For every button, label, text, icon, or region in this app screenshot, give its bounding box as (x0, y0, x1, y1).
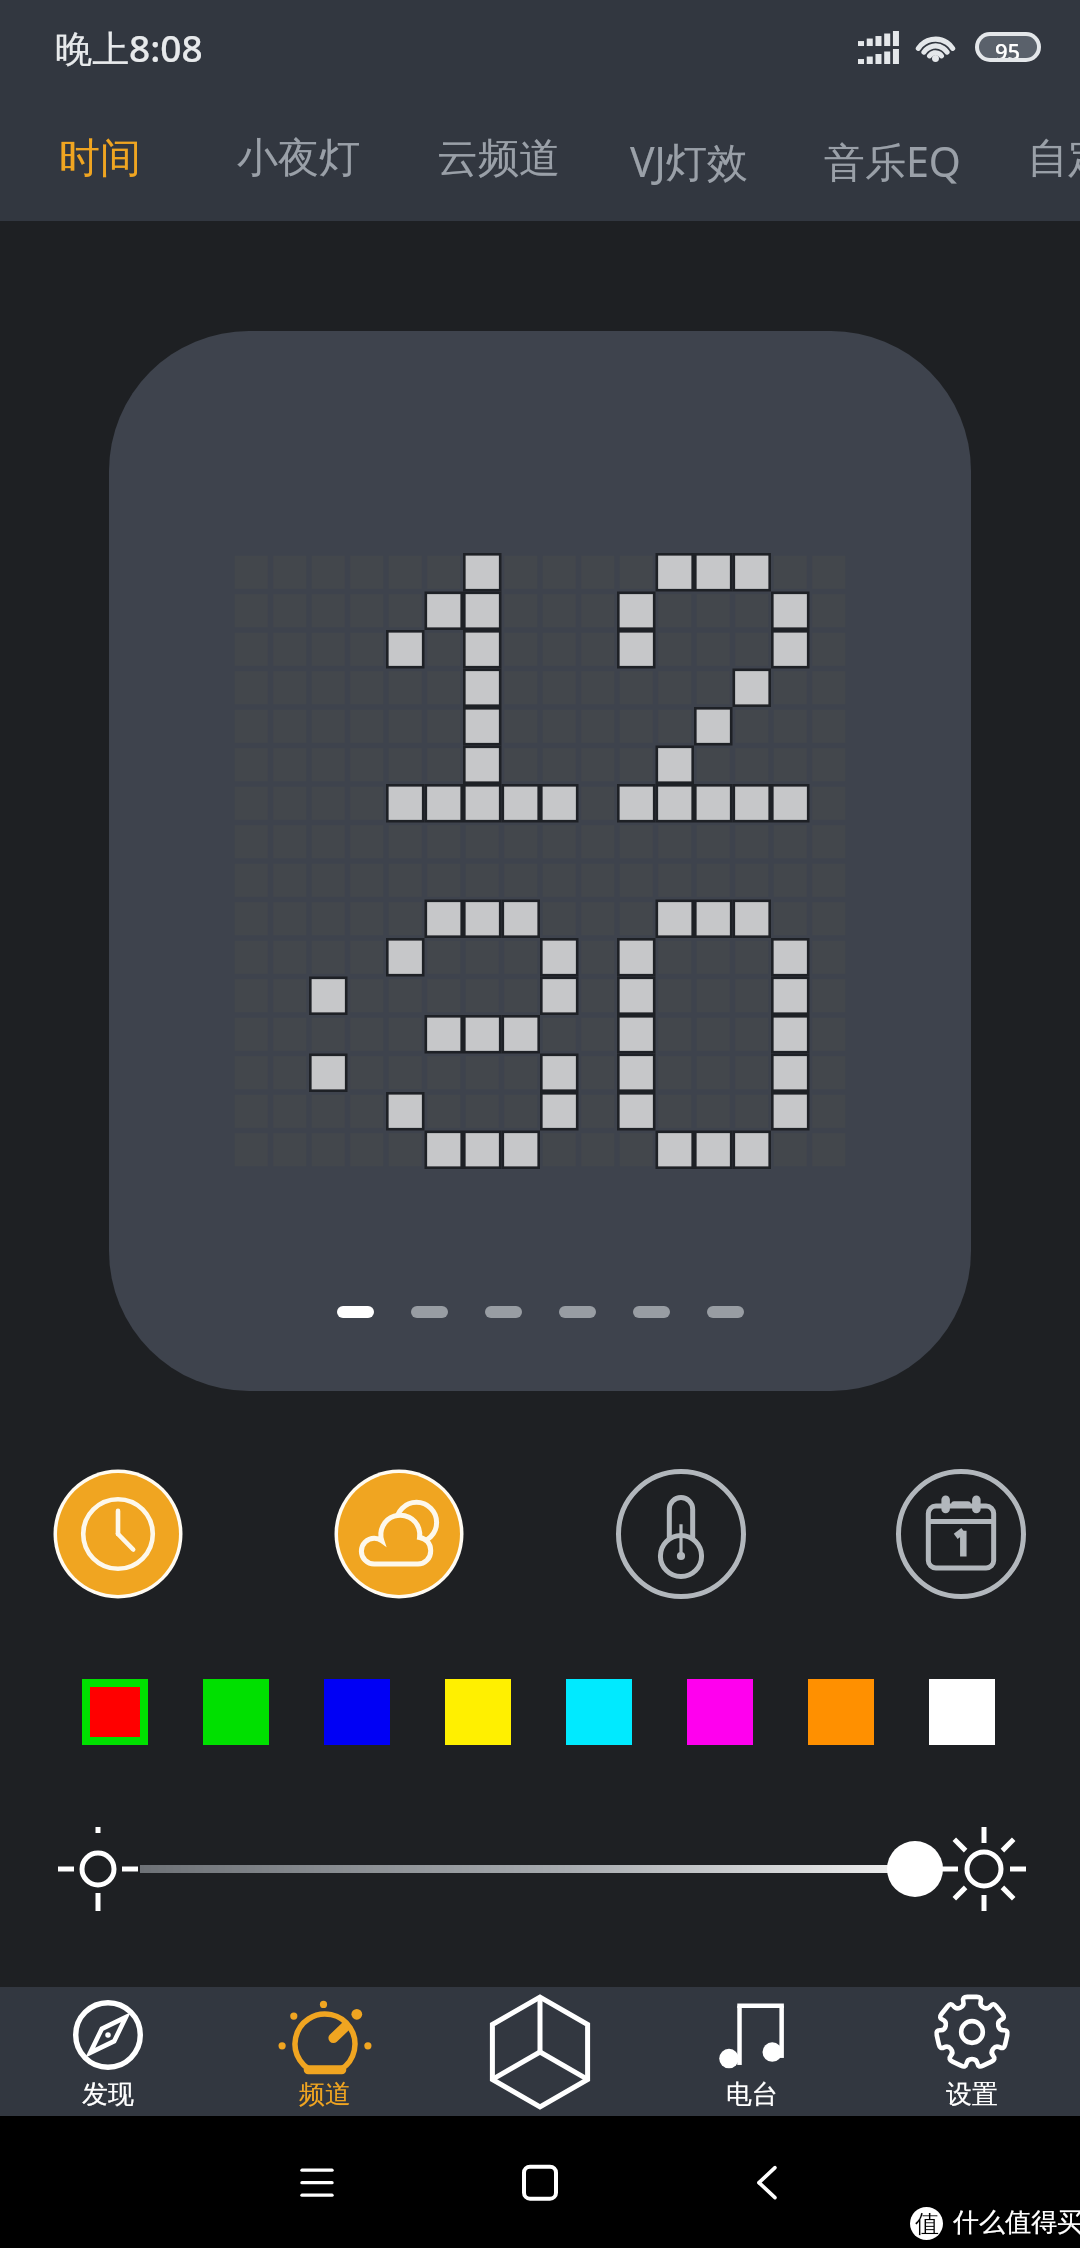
staticText: 自定义 (1027, 133, 1080, 185)
staticText: 值 (915, 2209, 939, 2239)
button[interactable]: 设置 (874, 1987, 1070, 2116)
staticText: 设置 (946, 2078, 998, 2111)
button[interactable]: Clock (52, 1468, 184, 1600)
staticText: 云频道 (437, 133, 560, 185)
button[interactable]: VJ灯效 (616, 124, 762, 198)
staticText: 音乐EQ (824, 133, 961, 189)
button[interactable]: 自定义 (1013, 124, 1080, 194)
button[interactable]: Home (480, 2116, 600, 2248)
button[interactable]: 小夜灯 (223, 124, 374, 194)
button[interactable]: 频道 (227, 1987, 423, 2116)
staticText: 小夜灯 (237, 133, 360, 185)
button[interactable] (82, 1679, 148, 1745)
button[interactable]: 时间 (45, 124, 155, 194)
button[interactable] (707, 1306, 744, 1318)
button[interactable] (337, 1306, 374, 1318)
button[interactable] (633, 1306, 670, 1318)
button[interactable]: Temperature (615, 1468, 747, 1600)
staticText: 95 (995, 36, 1021, 58)
button[interactable]: Menu (257, 2116, 377, 2248)
button[interactable]: Calendar (895, 1468, 1027, 1600)
staticText: 电台 (726, 2078, 778, 2111)
button[interactable] (109, 331, 971, 1391)
staticText: 频道 (299, 2078, 351, 2111)
button[interactable]: Back (707, 2116, 827, 2248)
button[interactable] (0, 1820, 1080, 1920)
button[interactable]: 云频道 (423, 124, 574, 194)
staticText: 发现 (82, 2078, 134, 2111)
button[interactable] (559, 1306, 596, 1318)
button[interactable]: 电台 (654, 1987, 850, 2116)
button[interactable] (411, 1306, 448, 1318)
button[interactable]: Scenes (442, 1987, 638, 2116)
button[interactable]: 发现 (10, 1987, 206, 2116)
staticText: VJ灯效 (630, 133, 748, 189)
staticText: 时间 (59, 133, 141, 185)
staticText: 晚上8:08 (55, 22, 203, 73)
staticText: 什么值得买 (953, 2206, 1080, 2239)
button[interactable]: 音乐EQ (810, 124, 975, 198)
button[interactable]: Weather (333, 1468, 465, 1600)
button[interactable] (485, 1306, 522, 1318)
